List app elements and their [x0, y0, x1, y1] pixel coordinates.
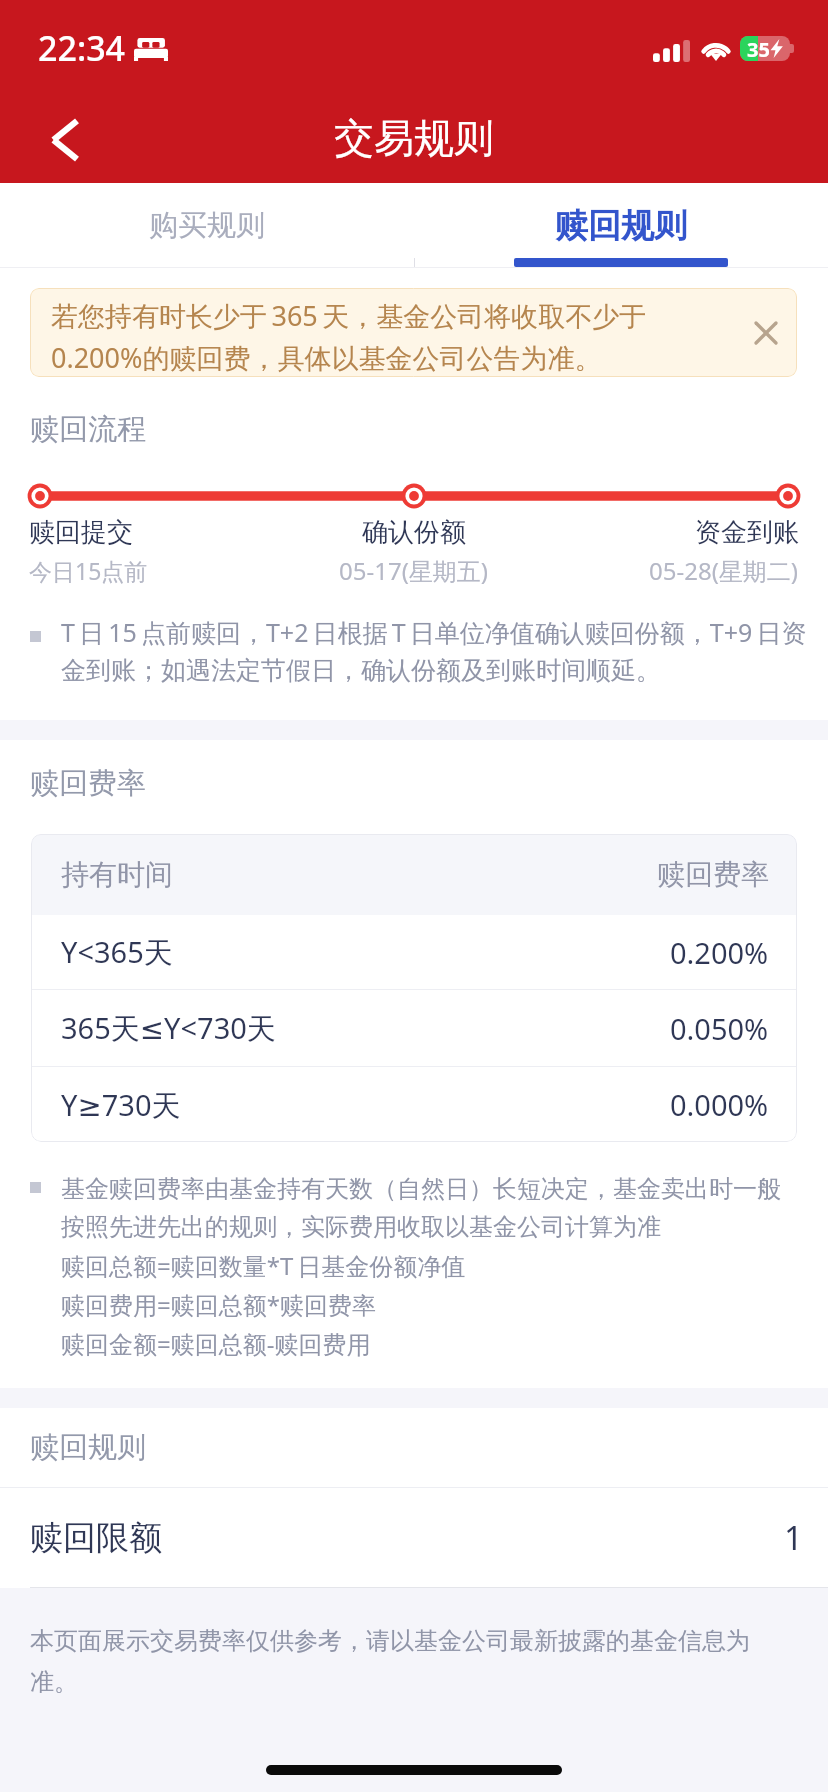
- staticText: 确认份额: [362, 516, 466, 549]
- staticText: 持有时间: [61, 857, 173, 892]
- staticText: 赎回规则: [30, 1429, 146, 1466]
- staticText: 365天≤Y<730天: [61, 1008, 276, 1048]
- staticText: Y<365天: [61, 932, 173, 972]
- staticText: 35: [747, 36, 770, 61]
- staticText: 0.050%: [670, 1009, 769, 1048]
- staticText: 1: [784, 1515, 803, 1560]
- staticText: 22:34: [38, 25, 126, 71]
- staticText: 交易规则: [334, 113, 494, 163]
- staticText: 05-28(星期二): [649, 554, 799, 587]
- staticText: 0.000%: [670, 1085, 769, 1124]
- button[interactable]: Back: [14, 92, 114, 183]
- staticText: T 日 15 点前赎回，T+2 日根据 T 日单位净值确认赎回份额，T+9 日资…: [61, 615, 807, 687]
- staticText: 基金赎回费率由基金持有天数（自然日）长短决定，基金卖出时一般 按照先进先出的规则…: [61, 1174, 781, 1360]
- button[interactable]: Close notice: [735, 289, 797, 377]
- staticText: 赎回流程: [30, 411, 146, 448]
- staticText: 05-17(星期五): [339, 554, 489, 587]
- staticText: 资金到账: [695, 516, 799, 549]
- staticText: 赎回规则: [555, 205, 687, 247]
- staticText: 购买规则: [149, 207, 265, 244]
- staticText: 赎回费率: [30, 765, 146, 802]
- staticText: 若您持有时长少于 365 天，基金公司将收取不少于 0.200%的赎回费，具体以…: [51, 297, 647, 376]
- staticText: 0.200%: [670, 933, 769, 972]
- staticText: 赎回限额: [30, 1517, 162, 1559]
- staticText: 本页面展示交易费率仅供参考，请以基金公司最新披露的基金信息为 准。: [30, 1626, 750, 1697]
- staticText: 赎回提交: [29, 516, 133, 549]
- button[interactable]: 赎回限额: [0, 1488, 828, 1587]
- staticText: 今日15点前: [29, 555, 148, 586]
- button[interactable]: 赎回规则: [414, 183, 828, 268]
- button[interactable]: 购买规则: [0, 183, 414, 268]
- staticText: 赎回费率: [657, 857, 769, 892]
- staticText: Y≥730天: [61, 1085, 181, 1125]
